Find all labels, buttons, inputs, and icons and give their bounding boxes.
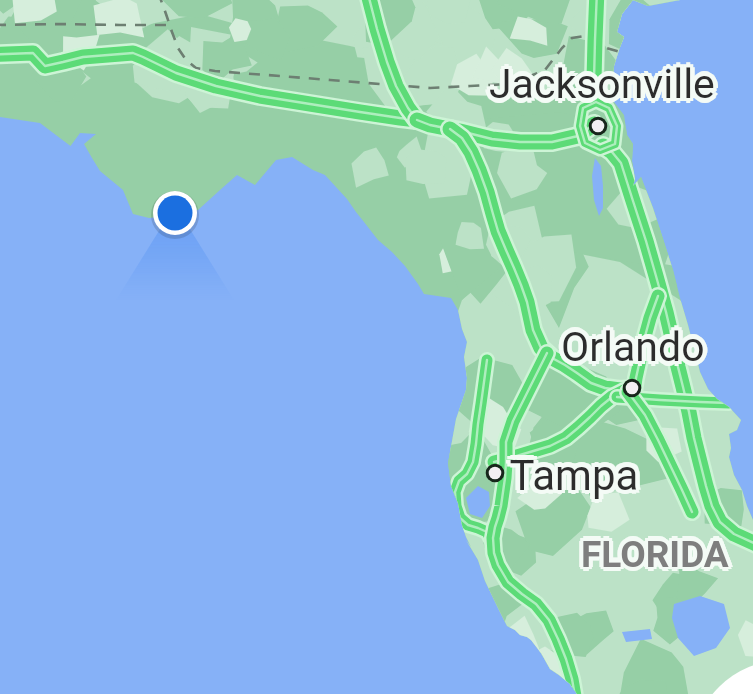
- button[interactable]: Map of Florida: [0, 0, 753, 694]
- button[interactable]: Recenter map: [692, 660, 753, 694]
- button[interactable]: My location: [153, 191, 197, 235]
